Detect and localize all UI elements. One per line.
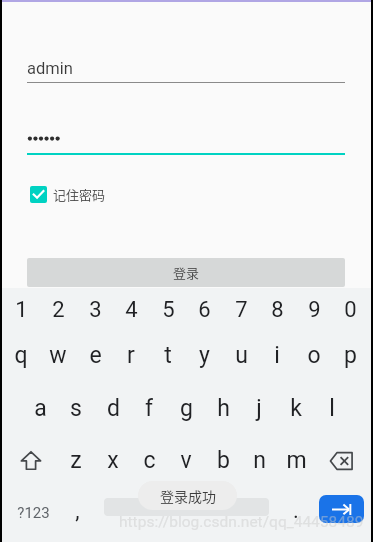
- staticText: f: [145, 395, 153, 422]
- button[interactable]: r: [101, 342, 161, 372]
- button[interactable]: q: [0, 342, 51, 372]
- staticText: w: [49, 342, 67, 369]
- button[interactable]: h: [193, 395, 253, 425]
- staticText: q: [14, 342, 28, 369]
- button[interactable]: l: [302, 395, 362, 425]
- staticText: .: [293, 498, 299, 524]
- staticText: a: [34, 395, 47, 422]
- staticText: 1: [15, 297, 28, 323]
- button[interactable]: y: [174, 342, 234, 372]
- staticText: 登录: [173, 263, 200, 282]
- staticText: k: [290, 395, 302, 422]
- staticText: s: [70, 395, 82, 422]
- button[interactable]: d: [83, 395, 143, 425]
- button[interactable]: w: [28, 342, 88, 372]
- button[interactable]: e: [65, 342, 125, 372]
- button[interactable]: o: [284, 342, 344, 372]
- button[interactable]: 7: [211, 297, 271, 327]
- button[interactable]: ,: [47, 498, 107, 528]
- staticText: 7: [235, 297, 248, 323]
- staticText: o: [307, 342, 321, 369]
- button[interactable]: p: [320, 342, 373, 372]
- staticText: h: [217, 395, 230, 422]
- button[interactable]: 8: [247, 297, 307, 327]
- button[interactable]: i: [247, 342, 307, 372]
- button[interactable]: v: [156, 447, 216, 477]
- staticText: 9: [308, 297, 321, 323]
- button[interactable]: s: [46, 395, 106, 425]
- button[interactable]: ?123: [3, 504, 63, 534]
- staticText: d: [107, 395, 120, 422]
- button[interactable]: t: [138, 342, 198, 372]
- button[interactable]: .: [266, 498, 326, 528]
- button[interactable]: f: [119, 395, 179, 425]
- button[interactable]: 0: [320, 297, 373, 327]
- staticText: c: [143, 447, 156, 474]
- staticText: ,: [75, 498, 80, 524]
- button[interactable]: Enter: [319, 495, 364, 523]
- staticText: l: [329, 395, 335, 422]
- staticText: g: [180, 395, 193, 422]
- button[interactable]: Shift: [3, 451, 58, 477]
- button[interactable]: g: [156, 395, 216, 425]
- button[interactable]: c: [119, 447, 179, 477]
- staticText: 记住密码: [53, 185, 106, 204]
- button[interactable]: 2: [28, 297, 88, 327]
- staticText: t: [164, 342, 172, 369]
- staticText: b: [217, 447, 230, 474]
- staticText: r: [127, 342, 135, 369]
- staticText: 3: [89, 297, 102, 323]
- staticText: 2: [52, 297, 65, 323]
- staticText: z: [70, 447, 82, 474]
- button[interactable]: k: [266, 395, 326, 425]
- button[interactable]: 6: [174, 297, 234, 327]
- staticText: 5: [162, 297, 175, 323]
- staticText: 登录成功: [160, 486, 216, 506]
- button[interactable]: j: [229, 395, 289, 425]
- staticText: m: [286, 447, 307, 474]
- staticText: 4: [125, 297, 138, 323]
- button[interactable]: b: [193, 447, 253, 477]
- button[interactable]: a: [10, 395, 70, 425]
- staticText: admin: [27, 59, 73, 78]
- button[interactable]: z: [46, 447, 106, 477]
- button[interactable]: m: [266, 447, 326, 477]
- button[interactable]: Space: [104, 498, 269, 516]
- staticText: 6: [198, 297, 211, 323]
- button[interactable]: u: [211, 342, 271, 372]
- button[interactable]: 9: [284, 297, 344, 327]
- staticText: j: [256, 395, 262, 422]
- staticText: ?123: [17, 504, 50, 522]
- button[interactable]: 登录: [27, 258, 345, 287]
- staticText: 8: [271, 297, 284, 323]
- button[interactable]: 1: [0, 297, 51, 327]
- staticText: 0: [344, 297, 357, 323]
- button[interactable]: n: [229, 447, 289, 477]
- staticText: i: [274, 342, 280, 369]
- staticText: u: [235, 342, 248, 369]
- staticText: y: [199, 342, 210, 369]
- staticText: p: [344, 342, 357, 369]
- button[interactable]: 记住密码: [30, 185, 106, 204]
- staticText: x: [107, 447, 119, 474]
- button[interactable]: 4: [101, 297, 161, 327]
- staticText: v: [180, 447, 192, 474]
- staticText: https://blog.csdn.net/qq_44458489: [119, 513, 364, 531]
- button[interactable]: x: [83, 447, 143, 477]
- button[interactable]: 3: [65, 297, 125, 327]
- staticText: n: [253, 447, 266, 474]
- staticText: e: [89, 342, 102, 369]
- button[interactable]: 5: [138, 297, 198, 327]
- button[interactable]: Delete: [314, 452, 369, 478]
